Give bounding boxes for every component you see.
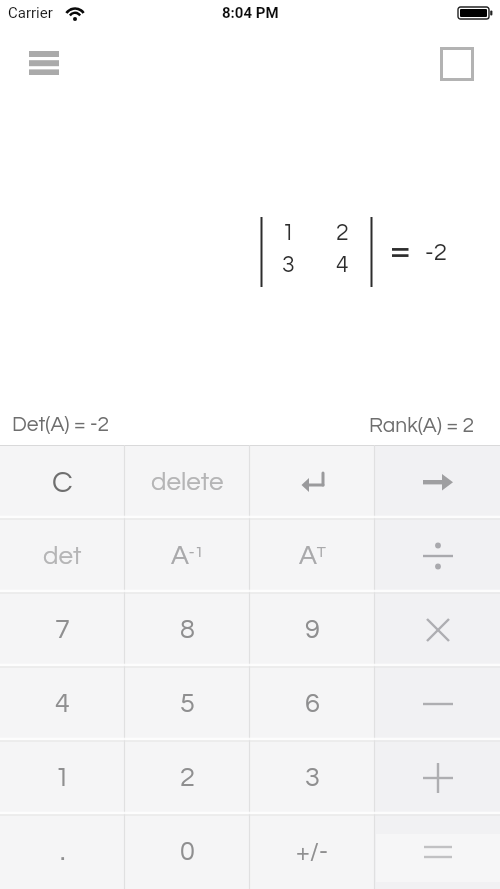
staticText: 3 (305, 764, 320, 792)
button[interactable] (18, 41, 70, 85)
staticText: 8:04 PM (222, 4, 279, 22)
button[interactable]: 8 (125, 593, 250, 667)
staticText: 9 (305, 616, 320, 644)
staticText: 2 (180, 764, 195, 792)
staticText: 3 (282, 253, 295, 277)
button[interactable] (432, 39, 482, 89)
staticText: -2 (425, 240, 447, 265)
staticText: 2 (336, 221, 349, 245)
button[interactable]: 4 (0, 667, 125, 741)
button[interactable]: 7 (0, 593, 125, 667)
staticText: 4 (336, 253, 349, 277)
staticText: det (43, 543, 82, 570)
staticText: delete (151, 469, 224, 496)
button[interactable]: det (0, 519, 125, 593)
button[interactable]: AT (250, 519, 375, 593)
staticText: Det(A) = -2 (12, 414, 110, 436)
button[interactable] (375, 519, 500, 593)
button[interactable]: 1 (0, 741, 125, 815)
staticText: 1 (282, 221, 295, 245)
button[interactable]: A-1 (125, 519, 250, 593)
staticText: Carrier (8, 4, 53, 22)
button[interactable]: 5 (125, 667, 250, 741)
button[interactable]: delete (125, 445, 250, 519)
staticText: A-1 (171, 542, 204, 570)
staticText: . (60, 838, 66, 866)
button[interactable] (250, 445, 375, 519)
button[interactable]: 3 (250, 741, 375, 815)
staticText: AT (299, 542, 326, 570)
button[interactable] (375, 815, 500, 889)
button[interactable] (375, 741, 500, 815)
button[interactable] (375, 445, 500, 519)
button[interactable]: 6 (250, 667, 375, 741)
staticText: 1 (55, 764, 70, 792)
button[interactable]: . (0, 815, 125, 889)
staticText: 4 (55, 690, 70, 718)
button[interactable]: +/- (250, 815, 375, 889)
staticText: C (52, 467, 73, 498)
button[interactable] (375, 593, 500, 667)
button[interactable]: C (0, 445, 125, 519)
button[interactable]: 9 (250, 593, 375, 667)
staticText: 6 (305, 690, 320, 718)
staticText: 0 (180, 838, 195, 866)
staticText: 8 (180, 616, 195, 644)
button[interactable]: 0 (125, 815, 250, 889)
button[interactable] (375, 667, 500, 741)
button[interactable]: 2 (125, 741, 250, 815)
staticText: Rank(A) = 2 (369, 415, 474, 437)
staticText: +/- (296, 839, 329, 865)
staticText: 5 (180, 690, 195, 718)
staticText: 7 (55, 616, 70, 644)
